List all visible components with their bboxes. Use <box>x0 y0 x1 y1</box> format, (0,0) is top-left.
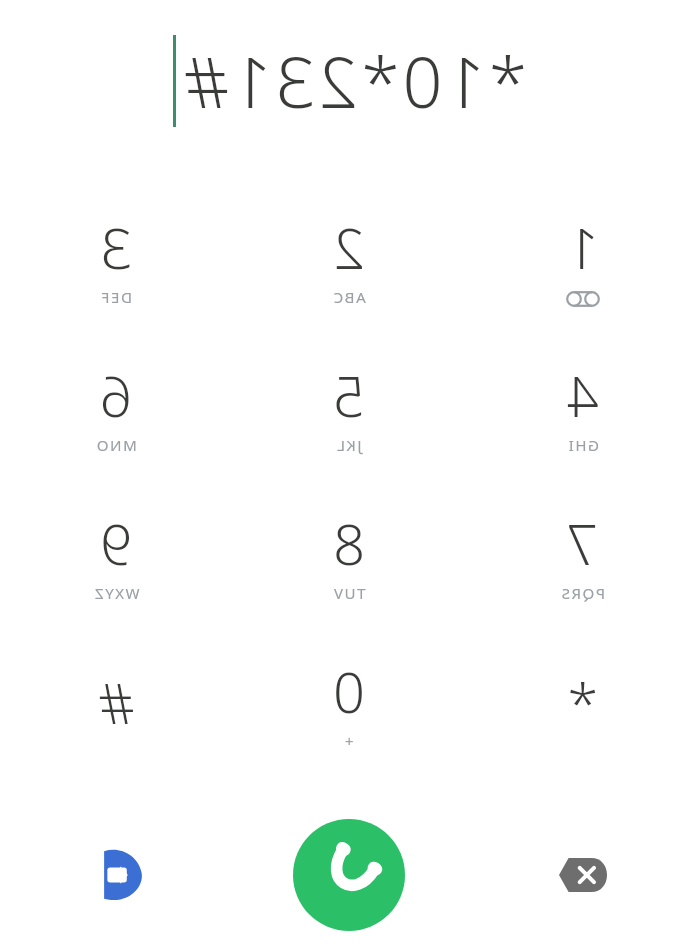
staticText: 2 <box>333 209 365 285</box>
button[interactable]: 4 <box>466 336 700 484</box>
button[interactable]: 1 <box>466 188 700 336</box>
button[interactable]: 5 <box>233 336 466 484</box>
staticText: GHI <box>567 435 599 455</box>
button[interactable]: 2 <box>233 188 466 336</box>
button[interactable]: 8 <box>233 484 466 632</box>
staticText: 0 <box>333 653 365 729</box>
staticText: WXYZ <box>93 583 140 603</box>
button[interactable]: * <box>466 632 700 780</box>
button[interactable]: 3 <box>0 188 233 336</box>
staticText: 8 <box>333 505 365 581</box>
staticText: 5 <box>333 357 365 433</box>
button[interactable]: Video call <box>0 815 233 935</box>
staticText: 1 <box>567 209 599 285</box>
button[interactable]: # <box>0 632 233 780</box>
button[interactable]: Call <box>293 819 405 931</box>
button[interactable]: 6 <box>0 336 233 484</box>
staticText: # <box>98 664 135 740</box>
staticText: * <box>567 664 598 740</box>
button[interactable]: 0 <box>233 632 466 780</box>
button[interactable]: Backspace <box>466 815 700 935</box>
button[interactable]: 7 <box>466 484 700 632</box>
staticText: PQRS <box>560 583 605 603</box>
staticText: TUV <box>332 583 366 603</box>
staticText: 4 <box>567 357 599 433</box>
staticText: 9 <box>100 505 132 581</box>
staticText: JKL <box>335 435 362 455</box>
staticText: 7 <box>566 505 598 581</box>
staticText: MNO <box>95 435 137 455</box>
staticText: 6 <box>100 357 132 433</box>
staticText: DEF <box>100 287 132 307</box>
staticText: + <box>343 731 354 751</box>
staticText: *10*231# <box>180 33 527 128</box>
button[interactable]: 9 <box>0 484 233 632</box>
staticText: 3 <box>100 209 132 285</box>
staticText: ABC <box>332 287 366 307</box>
